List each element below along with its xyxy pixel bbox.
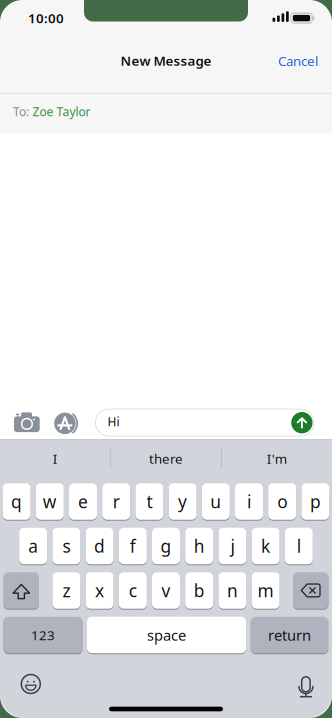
- button[interactable]: e: [69, 483, 97, 520]
- button[interactable]: k: [252, 527, 280, 565]
- staticText: d: [94, 534, 105, 557]
- staticText: t: [146, 490, 152, 513]
- staticText: o: [277, 490, 287, 513]
- staticText: e: [78, 490, 88, 513]
- staticText: x: [95, 579, 104, 602]
- staticText: b: [194, 579, 205, 602]
- button[interactable]: t: [135, 483, 163, 520]
- staticText: q: [11, 490, 22, 513]
- button[interactable]: b: [185, 572, 213, 609]
- button[interactable]: a: [19, 527, 47, 565]
- button[interactable]: h: [185, 527, 213, 565]
- staticText: l: [297, 534, 301, 557]
- staticText: return: [268, 625, 311, 645]
- button[interactable]: Emoji: [21, 674, 41, 694]
- button[interactable]: g: [152, 527, 180, 565]
- button[interactable]: q: [3, 483, 31, 520]
- button[interactable]: Shift: [4, 572, 39, 609]
- staticText: I'm: [267, 450, 287, 467]
- button[interactable]: f: [119, 527, 147, 565]
- staticText: n: [227, 579, 238, 602]
- staticText: a: [28, 534, 38, 557]
- button[interactable]: Camera: [12, 412, 42, 436]
- staticText: y: [178, 490, 187, 513]
- button[interactable]: p: [301, 483, 329, 520]
- button[interactable]: return: [251, 616, 328, 654]
- staticText: r: [113, 490, 120, 513]
- staticText: To:: [13, 104, 29, 120]
- button[interactable]: u: [202, 483, 230, 520]
- button[interactable]: o: [268, 483, 296, 520]
- button[interactable]: m: [252, 572, 280, 609]
- button[interactable]: s: [52, 527, 80, 565]
- staticText: p: [310, 490, 321, 513]
- staticText: m: [258, 579, 274, 602]
- button[interactable]: space: [87, 616, 246, 654]
- button[interactable]: r: [102, 483, 130, 520]
- staticText: s: [62, 534, 70, 557]
- staticText: v: [161, 579, 170, 602]
- button[interactable]: x: [86, 572, 114, 609]
- button[interactable]: To:: [0, 92, 332, 131]
- staticText: z: [62, 579, 70, 602]
- button[interactable]: d: [86, 527, 114, 565]
- button[interactable]: Apps: [52, 411, 80, 435]
- button[interactable]: 123: [3, 616, 82, 654]
- staticText: there: [149, 450, 183, 467]
- staticText: k: [261, 534, 270, 557]
- staticText: Cancel: [278, 52, 318, 70]
- button[interactable]: Cancel: [268, 46, 328, 76]
- button[interactable]: Send: [291, 412, 313, 433]
- staticText: f: [130, 534, 136, 557]
- staticText: space: [147, 625, 186, 645]
- button[interactable]: z: [52, 572, 80, 609]
- button[interactable]: there: [116, 440, 216, 476]
- staticText: 10:00: [28, 9, 64, 27]
- button[interactable]: Delete: [293, 572, 328, 609]
- staticText: h: [194, 534, 205, 557]
- button[interactable]: c: [119, 572, 147, 609]
- staticText: g: [160, 534, 171, 557]
- staticText: c: [129, 579, 137, 602]
- button[interactable]: i: [235, 483, 263, 520]
- staticText: Hi: [107, 414, 119, 430]
- staticText: New Message: [120, 52, 211, 69]
- button[interactable]: v: [152, 572, 180, 609]
- button[interactable]: I'm: [227, 440, 327, 476]
- button[interactable]: l: [285, 527, 313, 565]
- button[interactable]: w: [36, 483, 64, 520]
- staticText: I: [53, 450, 58, 467]
- staticText: j: [230, 534, 234, 557]
- staticText: w: [43, 490, 57, 513]
- button[interactable]: j: [218, 527, 246, 565]
- button[interactable]: y: [169, 483, 197, 520]
- staticText: Zoe Taylor: [32, 104, 90, 120]
- button[interactable]: I: [5, 440, 105, 476]
- button[interactable]: n: [218, 572, 246, 609]
- staticText: u: [210, 490, 221, 513]
- button[interactable]: Dictate: [296, 673, 316, 699]
- staticText: 123: [31, 626, 55, 644]
- staticText: i: [247, 490, 251, 513]
- button[interactable]: Hi: [95, 409, 314, 436]
